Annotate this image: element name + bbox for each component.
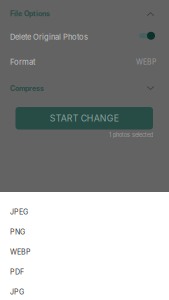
button[interactable]: WEBP xyxy=(0,242,169,262)
button[interactable]: PDF xyxy=(0,262,169,282)
staticText: JPEG xyxy=(10,208,28,216)
staticText: File Options xyxy=(10,9,50,18)
button[interactable]: Format xyxy=(0,46,169,77)
button[interactable]: Delete Original Photos xyxy=(139,32,155,42)
staticText: JPG xyxy=(10,288,24,296)
button[interactable]: JPG xyxy=(0,282,169,300)
staticText: PDF xyxy=(10,268,24,276)
button[interactable]: Compress xyxy=(0,77,169,99)
button[interactable]: START CHANGE xyxy=(15,107,153,129)
staticText: PNG xyxy=(10,228,25,236)
staticText: WEBP xyxy=(136,58,156,66)
staticText: Compress xyxy=(10,84,44,93)
button[interactable]: File Options xyxy=(0,0,169,27)
staticText: Format xyxy=(10,57,36,67)
staticText: Delete Original Photos xyxy=(10,32,88,42)
staticText: WEBP xyxy=(10,248,31,256)
button[interactable]: JPEG xyxy=(0,202,169,222)
staticText: 1 photos selected xyxy=(109,131,153,138)
button[interactable]: PNG xyxy=(0,222,169,242)
staticText: START CHANGE xyxy=(50,113,119,123)
